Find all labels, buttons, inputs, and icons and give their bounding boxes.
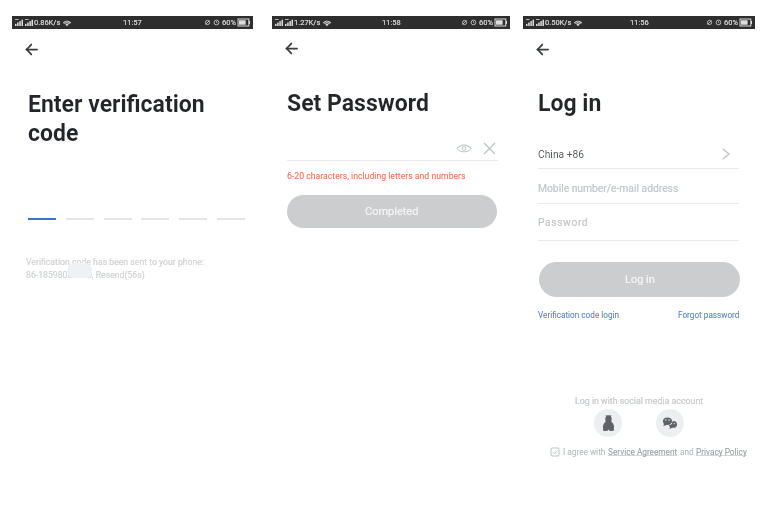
staticText: Mobile number/e-mail address <box>538 182 679 194</box>
button[interactable]: Log in with WeChat <box>656 409 684 437</box>
staticText: China +86 <box>538 148 585 160</box>
staticText: Privacy Policy <box>696 447 747 457</box>
button[interactable]: Privacy Policy <box>696 447 747 457</box>
staticText: 60% <box>479 18 493 27</box>
button[interactable]: Verification code login <box>534 305 624 325</box>
staticText: Forgot password <box>678 310 740 320</box>
staticText: and <box>678 447 696 457</box>
staticText: 60% <box>222 18 236 27</box>
staticText: Enter verification code <box>28 91 205 147</box>
staticText: 0.50K/s <box>545 18 572 27</box>
staticText: 11:56 <box>630 18 649 27</box>
staticText: Log in with social media account <box>575 396 704 406</box>
staticText: Service Agreement <box>608 447 678 457</box>
staticText: Verification code has been sent to your … <box>26 257 205 280</box>
staticText: 0.86K/s <box>34 18 61 27</box>
staticText: 11:57 <box>123 18 142 27</box>
staticText: 11:58 <box>382 18 401 27</box>
button[interactable]: Forgot password <box>674 305 744 325</box>
button[interactable]: Completed <box>287 195 497 228</box>
staticText: 60% <box>724 18 738 27</box>
staticText: Log in <box>625 273 655 286</box>
button[interactable]: Back <box>19 37 44 62</box>
staticText: Verification code login <box>538 310 620 320</box>
staticText: Password <box>538 216 589 228</box>
staticText: I agree with <box>563 447 608 457</box>
staticText: Log in <box>538 90 602 117</box>
button[interactable]: Service Agreement <box>608 447 678 457</box>
button[interactable]: Agree to terms <box>549 446 561 458</box>
button[interactable]: China +86 <box>538 141 739 167</box>
button[interactable]: Log in with QQ <box>594 409 622 437</box>
button[interactable]: Back <box>279 36 304 61</box>
staticText: 1.27K/s <box>294 18 321 27</box>
button[interactable]: Password <box>538 204 739 240</box>
staticText: Completed <box>365 205 419 218</box>
button[interactable]: Clear <box>479 138 499 158</box>
staticText: Set Password <box>287 90 429 117</box>
button[interactable]: Log in <box>539 262 740 297</box>
button[interactable]: Mobile number/e-mail address <box>538 171 739 204</box>
button[interactable]: Show password <box>454 138 474 158</box>
button[interactable]: Back <box>530 37 555 62</box>
staticText: 6-20 characters, including letters and n… <box>287 171 466 181</box>
